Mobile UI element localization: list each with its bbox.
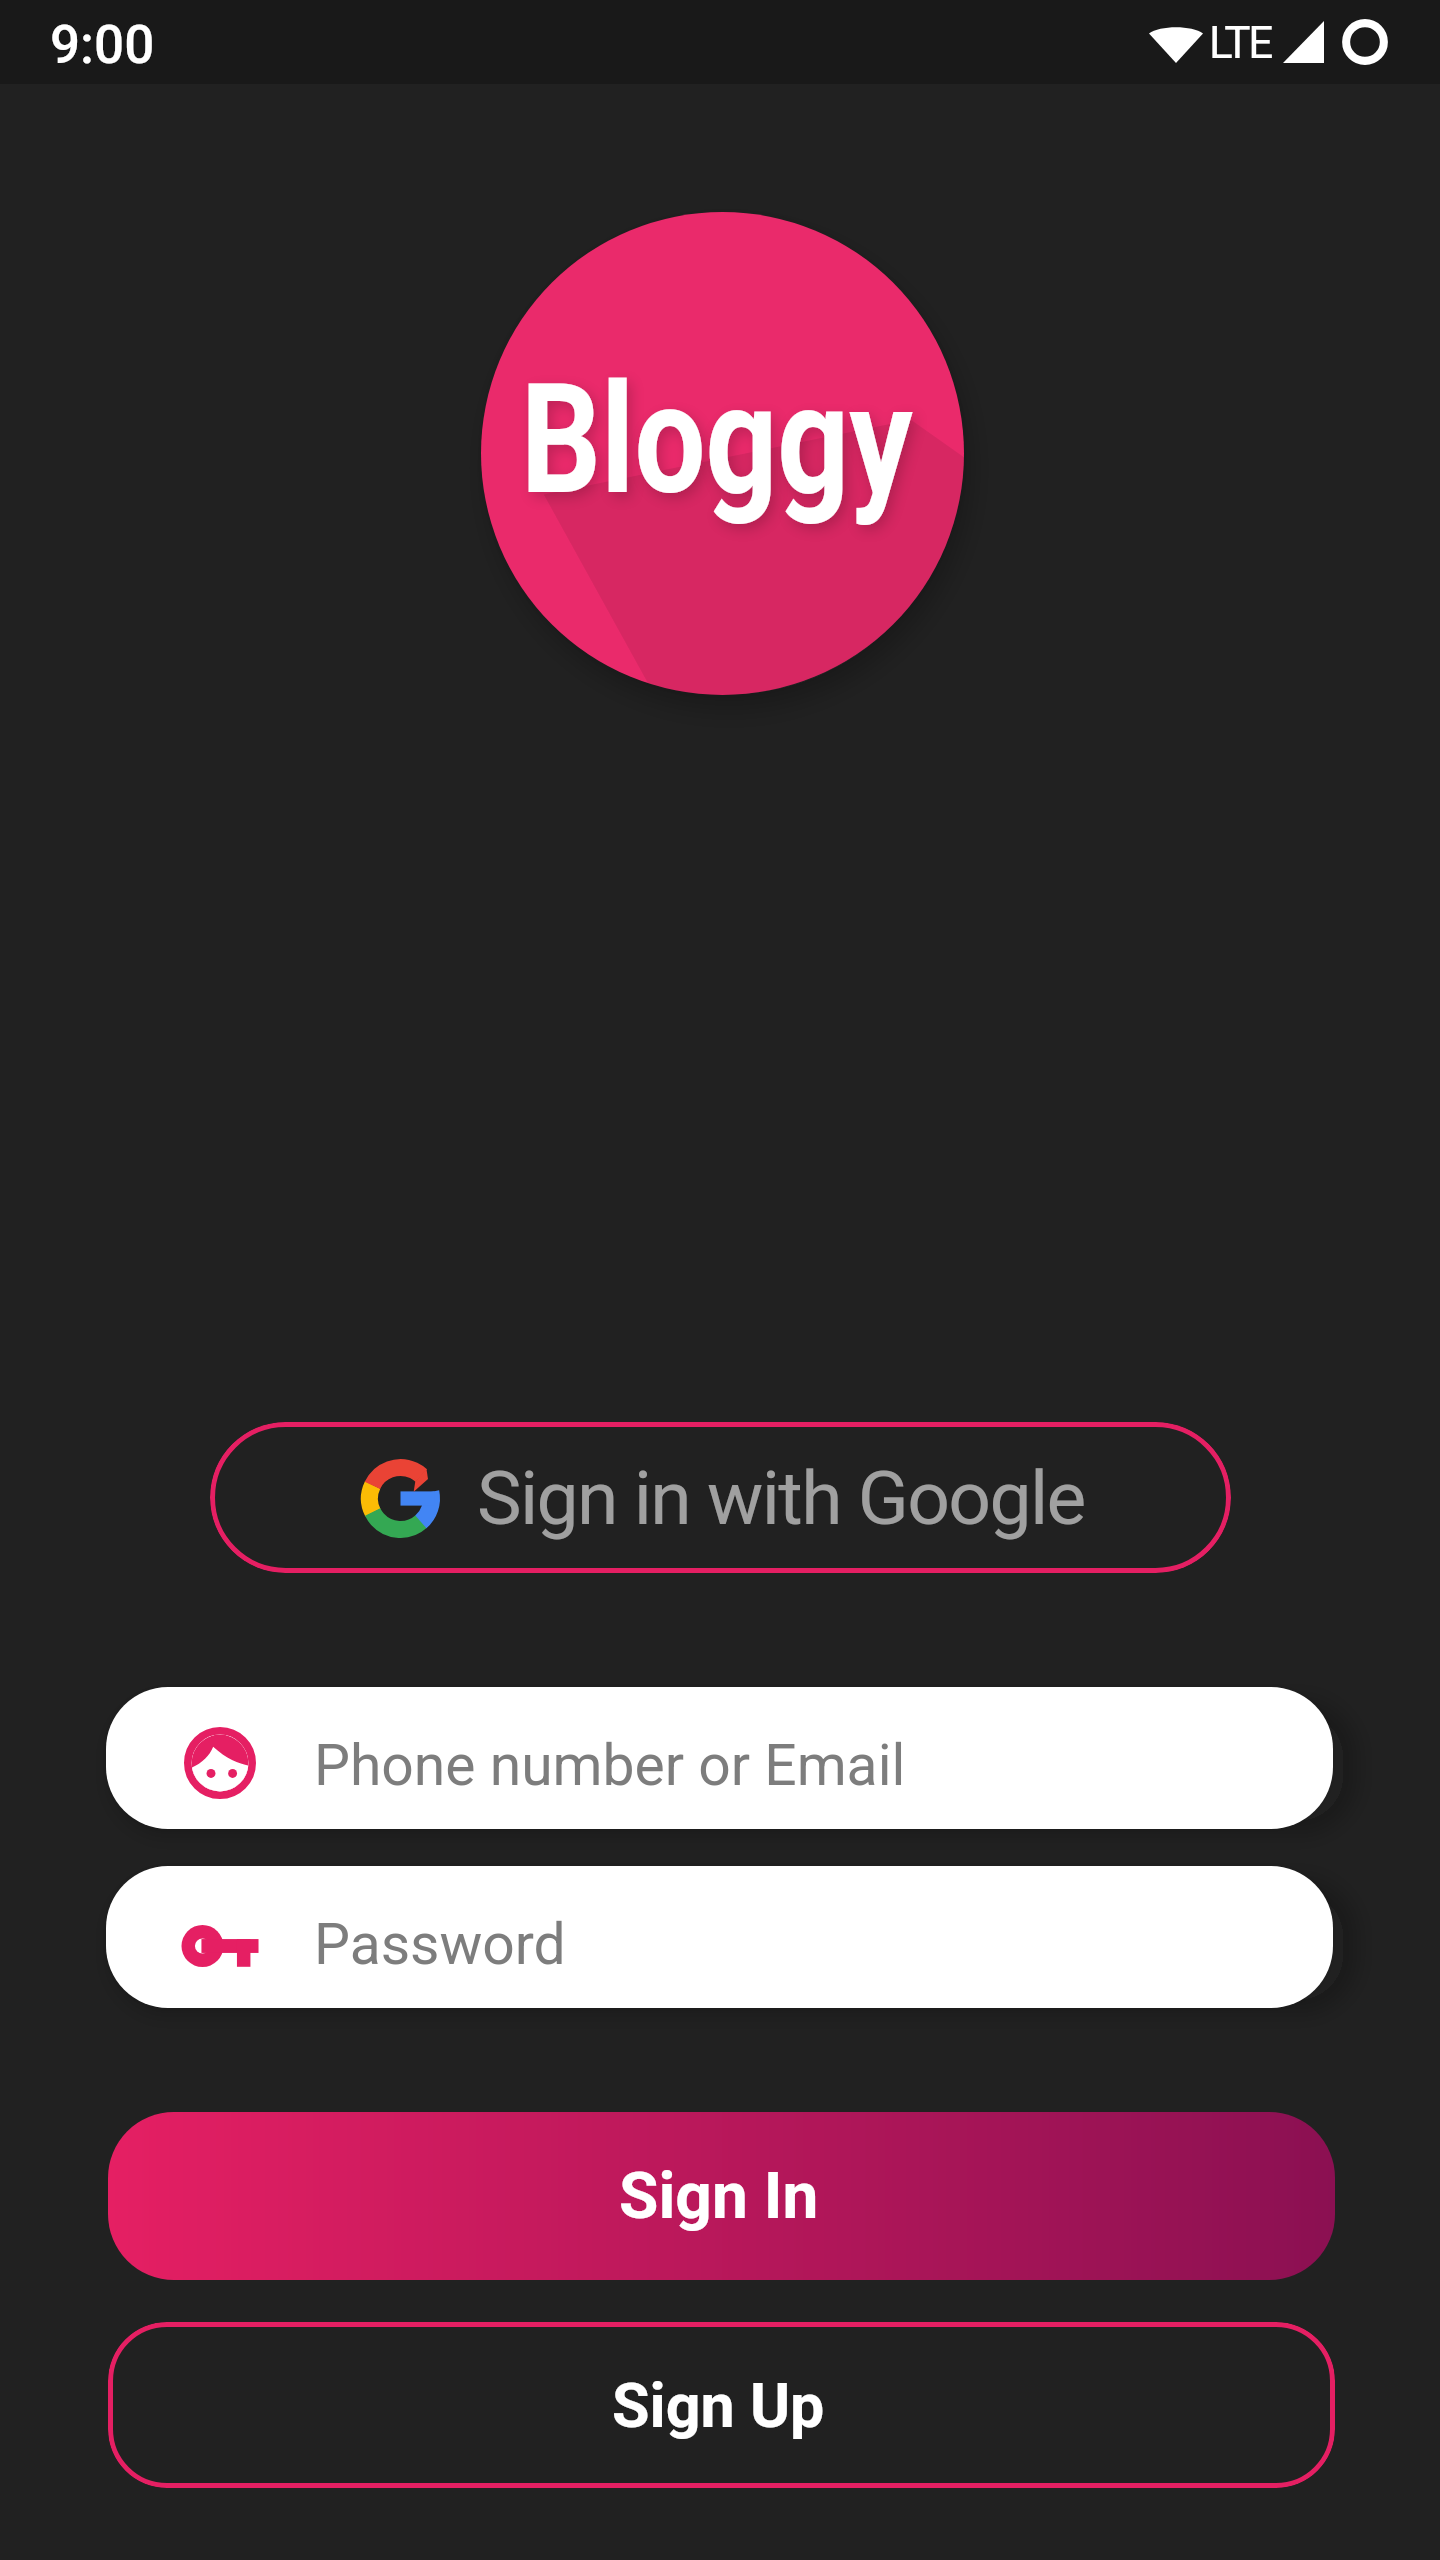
staticText: Bloggy bbox=[521, 351, 913, 529]
staticText: LTE bbox=[1209, 17, 1271, 69]
staticText: Phone number or Email bbox=[314, 1732, 906, 1799]
staticText: Sign In bbox=[619, 2159, 819, 2234]
other: Mobile signal bbox=[1283, 21, 1324, 63]
other: Battery bbox=[1342, 19, 1388, 65]
staticText: Password bbox=[314, 1911, 566, 1978]
button[interactable]: Account bbox=[106, 1687, 1333, 1829]
other: Google logo bbox=[361, 1459, 440, 1538]
staticText: 9:00 bbox=[50, 14, 155, 76]
staticText: Sign in with Google bbox=[477, 1454, 1085, 1542]
button[interactable]: Google logo bbox=[210, 1422, 1231, 1573]
button[interactable]: Sign Up bbox=[108, 2322, 1335, 2488]
staticText: Sign Up bbox=[612, 2370, 825, 2441]
other: Wi-Fi signal bbox=[1149, 21, 1203, 63]
button[interactable]: Sign In bbox=[108, 2112, 1335, 2280]
other: Password bbox=[178, 1904, 262, 1988]
other: Account bbox=[178, 1721, 262, 1805]
button[interactable]: Password bbox=[106, 1866, 1333, 2008]
